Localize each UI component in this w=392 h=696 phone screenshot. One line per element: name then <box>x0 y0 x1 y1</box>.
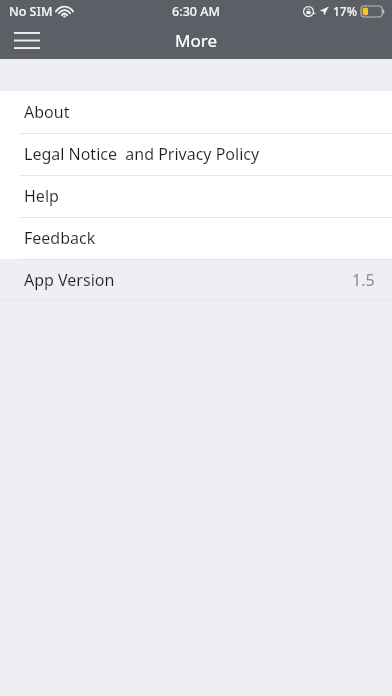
staticText: App Version <box>24 269 115 291</box>
button[interactable]: About <box>0 91 392 133</box>
button[interactable]: Feedback <box>0 217 392 259</box>
staticText: More <box>175 29 217 52</box>
button[interactable]: Open navigation menu <box>0 22 54 59</box>
staticText: About <box>24 101 70 123</box>
button[interactable]: Help <box>0 175 392 217</box>
staticText: Feedback <box>24 227 96 249</box>
staticText: Legal Notice and Privacy Policy <box>24 143 260 165</box>
staticText: No SIM <box>9 3 53 20</box>
staticText: 6:30 AM <box>172 3 220 20</box>
button[interactable]: App Version <box>0 259 392 300</box>
staticText: Help <box>24 185 59 207</box>
button[interactable]: Legal Notice and Privacy Policy <box>0 133 392 175</box>
staticText: 17% <box>333 3 357 19</box>
staticText: 1.5 <box>352 269 375 291</box>
